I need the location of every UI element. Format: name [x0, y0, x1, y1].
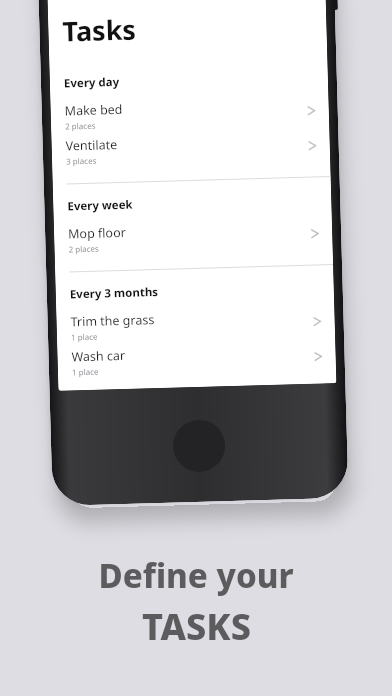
staticText: Tasks: [62, 10, 137, 50]
button[interactable]: Make bed: [50, 94, 329, 137]
staticText: Define your: [98, 553, 294, 598]
staticText: 2 places: [68, 243, 100, 254]
button[interactable]: Trim the grass: [56, 305, 335, 348]
button[interactable]: Wash car: [57, 340, 336, 383]
staticText: Wash car: [71, 347, 126, 365]
button[interactable]: Mop floor: [54, 217, 333, 260]
button[interactable]: Home: [172, 419, 226, 473]
staticText: 1 place: [72, 366, 99, 377]
staticText: 3 places: [66, 155, 97, 166]
staticText: Ventilate: [65, 136, 118, 154]
staticText: Trim the grass: [70, 311, 155, 330]
staticText: TASKS: [142, 602, 251, 651]
staticText: Every week: [67, 197, 133, 214]
staticText: 2 places: [65, 120, 96, 132]
staticText: Mop floor: [68, 224, 126, 242]
staticText: 1 place: [71, 331, 98, 342]
button[interactable]: Ventilate: [51, 129, 330, 172]
staticText: Every day: [64, 74, 120, 92]
staticText: Make bed: [64, 101, 123, 119]
staticText: Every 3 months: [70, 284, 159, 302]
